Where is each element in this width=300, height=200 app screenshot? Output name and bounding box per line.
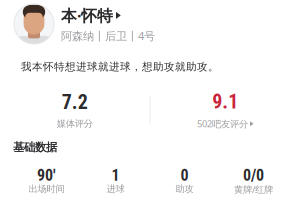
staticText: 出场时间 xyxy=(28,183,64,195)
staticText: 0 xyxy=(180,166,188,185)
staticText: 1 xyxy=(111,166,119,185)
staticText: 502吧友评分 xyxy=(197,117,248,130)
staticText: 阿森纳丨后卫丨4号 xyxy=(61,28,155,43)
staticText: 9.1 xyxy=(212,90,238,113)
staticText: 本·怀特 xyxy=(61,5,113,26)
staticText: 我本怀特想进球就进球，想助攻就助攻。 xyxy=(21,60,219,73)
button[interactable]: 本·怀特 xyxy=(14,4,296,44)
staticText: 媒体评分 xyxy=(57,118,93,130)
staticText: 0/0 xyxy=(243,166,264,185)
button[interactable]: 7.2 xyxy=(0,90,149,130)
staticText: 7.2 xyxy=(62,90,88,114)
staticText: 基础数据 xyxy=(13,140,57,154)
button[interactable]: 9.1 xyxy=(150,90,300,130)
staticText: 助攻 xyxy=(175,183,193,195)
staticText: 黄牌/红牌 xyxy=(234,183,273,196)
staticText: 90' xyxy=(37,166,56,185)
staticText: 进球 xyxy=(106,183,124,195)
